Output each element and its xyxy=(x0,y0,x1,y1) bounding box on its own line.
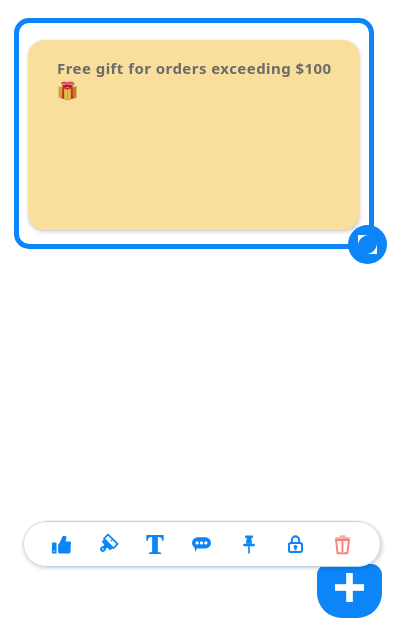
button[interactable]: Free gift for orders exceeding $100 xyxy=(28,40,359,230)
button[interactable]: Delete xyxy=(319,521,366,567)
button[interactable]: Text style xyxy=(131,521,178,567)
button[interactable]: Pin xyxy=(225,521,272,567)
button[interactable]: Comment xyxy=(178,521,225,567)
staticText: Free gift for orders exceeding $100 xyxy=(57,58,332,78)
button[interactable]: Lock xyxy=(272,521,319,567)
button[interactable]: Add xyxy=(317,564,382,618)
button[interactable]: Like xyxy=(38,521,84,567)
button[interactable]: Resize xyxy=(348,225,387,264)
button[interactable]: Format paint xyxy=(84,521,131,567)
